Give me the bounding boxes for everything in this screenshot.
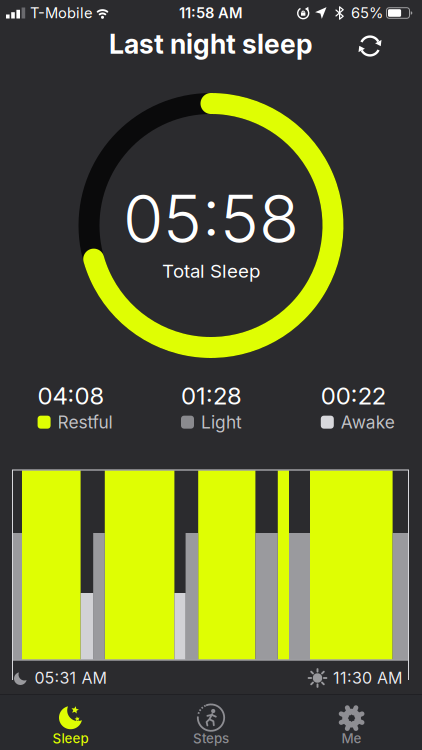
staticText: 05:58 — [123, 180, 299, 258]
staticText: 04:08 — [38, 382, 105, 410]
staticText: 11:30 AM — [333, 669, 402, 687]
staticText: Restful — [58, 412, 113, 432]
staticText: Me — [342, 731, 362, 746]
staticText: Total Sleep — [162, 260, 260, 282]
staticText: 00:22 — [321, 382, 386, 410]
staticText: Steps — [193, 731, 229, 746]
staticText: Last night sleep — [109, 28, 313, 60]
button[interactable]: Steps — [141, 695, 281, 750]
staticText: 65% — [351, 4, 383, 22]
button[interactable]: Sleep — [0, 695, 141, 750]
button[interactable]: Me — [281, 695, 422, 750]
staticText: Light — [201, 412, 242, 432]
button[interactable] — [353, 29, 387, 63]
staticText: 11:58 AM — [179, 4, 243, 22]
staticText: Sleep — [52, 731, 88, 746]
staticText: 01:28 — [181, 382, 242, 410]
staticText: Awake — [341, 412, 395, 432]
staticText: T-Mobile — [30, 4, 93, 22]
staticText: 05:31 AM — [34, 669, 106, 687]
